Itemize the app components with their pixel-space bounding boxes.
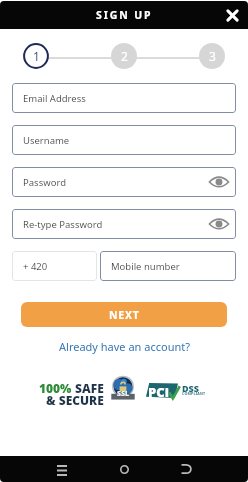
staticText: 3	[209, 48, 216, 64]
button[interactable]: Password	[12, 167, 236, 197]
staticText: NEXT	[109, 308, 140, 322]
button[interactable]: Recent apps	[52, 459, 72, 479]
staticText: Mobile number	[111, 260, 180, 273]
staticText: Username	[23, 134, 70, 147]
staticText: Re-type Password	[23, 218, 103, 231]
button[interactable]: Back	[176, 459, 196, 479]
button[interactable]: Close	[221, 4, 243, 26]
button[interactable]: Already have an account?	[55, 338, 194, 355]
button[interactable]: Username	[12, 125, 236, 155]
button[interactable]: Show password	[208, 171, 230, 193]
staticText: PCi	[148, 383, 169, 401]
button[interactable]: NEXT	[21, 302, 227, 327]
staticText: 2	[121, 48, 128, 64]
button[interactable]: Re-type Password	[12, 209, 236, 239]
staticText: SAFE	[72, 380, 104, 396]
staticText: SIGN UP	[96, 8, 153, 22]
staticText: & SECURE	[46, 392, 104, 408]
button[interactable]: Mobile number	[100, 251, 236, 281]
staticText: 1	[33, 48, 40, 64]
staticText: 100%	[39, 380, 72, 396]
staticText: SSL	[117, 389, 130, 399]
button[interactable]: Home	[114, 459, 134, 479]
button[interactable]: + 420	[12, 251, 97, 281]
staticText: Email Address	[23, 92, 86, 105]
staticText: + 420	[23, 260, 48, 273]
button[interactable]: Email Address	[12, 83, 236, 113]
staticText: DSS	[182, 382, 199, 394]
staticText: Already have an account?	[59, 339, 190, 354]
button[interactable]: Show password	[208, 213, 230, 235]
staticText: Password	[23, 176, 66, 189]
staticText: COMPLIANT	[182, 391, 206, 396]
